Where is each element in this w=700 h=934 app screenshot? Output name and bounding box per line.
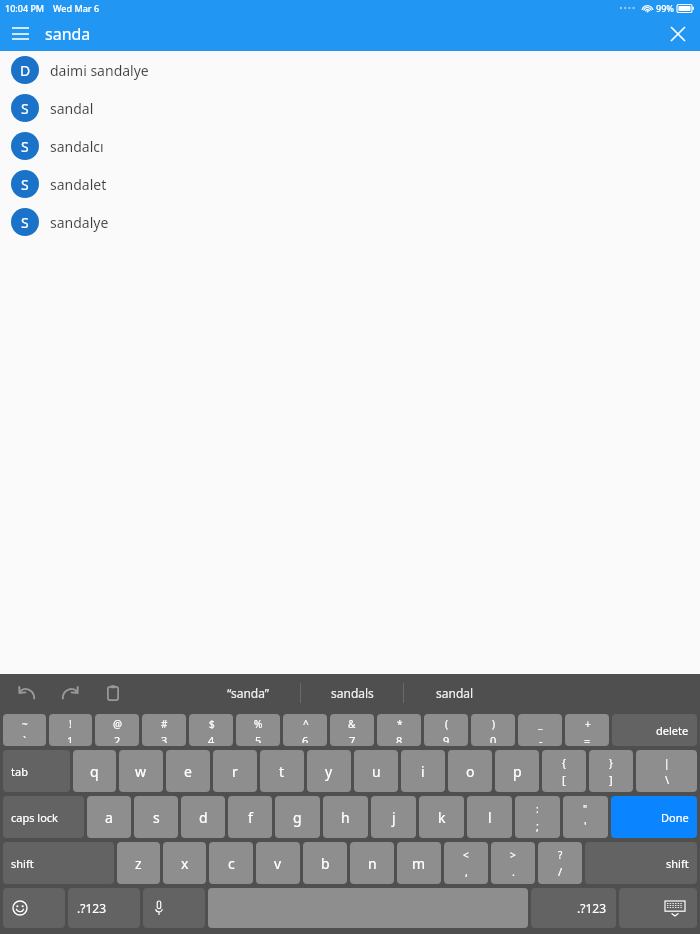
staticText: m <box>412 854 426 873</box>
button[interactable]: y <box>307 750 351 792</box>
staticText: t <box>279 762 285 781</box>
staticText: ^ <box>303 717 309 731</box>
button[interactable]: Done <box>611 796 697 838</box>
button[interactable]: S <box>0 127 700 165</box>
button[interactable]: caps lock <box>3 796 84 838</box>
button[interactable]: _ <box>518 714 562 746</box>
button[interactable]: Redo <box>57 680 83 706</box>
button[interactable]: .?123 <box>68 888 140 928</box>
button[interactable]: w <box>119 750 163 792</box>
staticText: $ <box>209 717 215 731</box>
button[interactable]: l <box>467 796 512 838</box>
staticText: } <box>609 756 613 770</box>
button[interactable]: a <box>87 796 131 838</box>
staticText: tab <box>11 764 28 779</box>
button[interactable]: S <box>0 89 700 127</box>
button[interactable]: .?123 <box>531 888 616 928</box>
button[interactable]: $ <box>189 714 233 746</box>
button[interactable]: o <box>448 750 492 792</box>
staticText: = <box>584 733 591 743</box>
staticText: f <box>248 808 253 827</box>
button[interactable]: g <box>275 796 320 838</box>
button[interactable]: k <box>419 796 464 838</box>
button[interactable]: r <box>213 750 257 792</box>
button[interactable]: D <box>0 51 700 89</box>
button[interactable]: | <box>636 750 697 792</box>
button[interactable]: Voice input <box>143 888 205 928</box>
staticText: 0 <box>490 733 497 743</box>
staticText: 5 <box>255 733 262 743</box>
button[interactable]: Paste <box>100 680 126 706</box>
button[interactable]: S <box>0 165 700 203</box>
button[interactable]: “sanda” <box>196 674 300 712</box>
button[interactable]: ~ <box>3 714 46 746</box>
button[interactable]: sandal <box>404 674 506 712</box>
button[interactable]: ^ <box>283 714 327 746</box>
button[interactable]: h <box>323 796 368 838</box>
staticText: ] <box>609 772 613 787</box>
button[interactable]: > <box>491 842 535 884</box>
button[interactable]: d <box>181 796 225 838</box>
button[interactable]: @ <box>95 714 139 746</box>
button[interactable]: delete <box>612 714 697 746</box>
button[interactable]: S <box>0 203 700 241</box>
button[interactable]: s <box>134 796 178 838</box>
staticText: daimi sandalye <box>50 61 149 80</box>
staticText: * <box>397 717 403 731</box>
button[interactable]: m <box>397 842 441 884</box>
button[interactable]: Hide keyboard <box>619 888 697 928</box>
staticText: q <box>90 762 99 781</box>
button[interactable]: q <box>73 750 116 792</box>
staticText: 1 <box>67 733 74 743</box>
button[interactable]: n <box>350 842 394 884</box>
button[interactable]: < <box>444 842 488 884</box>
staticText: e <box>184 762 192 781</box>
button[interactable]: u <box>354 750 398 792</box>
button[interactable]: + <box>565 714 609 746</box>
button[interactable]: f <box>228 796 272 838</box>
staticText: S <box>21 99 29 118</box>
staticText: ) <box>492 717 495 731</box>
staticText: D <box>20 61 31 80</box>
button[interactable]: c <box>209 842 253 884</box>
staticText: \ <box>665 772 670 787</box>
button[interactable]: x <box>163 842 206 884</box>
staticText: 4 <box>208 733 215 743</box>
button[interactable]: shift <box>585 842 697 884</box>
staticText: _ <box>538 717 543 731</box>
staticText: 7 <box>349 733 356 743</box>
button[interactable]: Emoji <box>3 888 65 928</box>
button[interactable]: { <box>542 750 586 792</box>
button[interactable]: Undo <box>14 680 40 706</box>
button[interactable]: Menu <box>0 16 40 51</box>
button[interactable]: j <box>371 796 416 838</box>
button[interactable]: % <box>236 714 280 746</box>
button[interactable]: shift <box>3 842 114 884</box>
button[interactable]: Close <box>656 16 700 51</box>
button[interactable]: } <box>589 750 633 792</box>
staticText: sandal <box>50 99 94 118</box>
button[interactable]: : <box>515 796 560 838</box>
button[interactable]: " <box>563 796 608 838</box>
button[interactable]: ! <box>49 714 92 746</box>
button[interactable]: b <box>303 842 347 884</box>
button[interactable]: * <box>377 714 421 746</box>
staticText: sanda <box>45 23 656 45</box>
staticText: sandal <box>436 685 474 701</box>
button[interactable]: e <box>166 750 210 792</box>
button[interactable]: p <box>495 750 539 792</box>
button[interactable]: tab <box>3 750 70 792</box>
button[interactable]: i <box>401 750 445 792</box>
button[interactable]: ) <box>471 714 515 746</box>
button[interactable]: z <box>117 842 160 884</box>
button[interactable]: ? <box>538 842 582 884</box>
button[interactable]: & <box>330 714 374 746</box>
button[interactable]: ( <box>424 714 468 746</box>
button[interactable]: t <box>260 750 304 792</box>
button[interactable]: # <box>142 714 186 746</box>
button[interactable]: sandals <box>301 674 403 712</box>
staticText: y <box>325 762 333 781</box>
button[interactable]: v <box>256 842 300 884</box>
staticText: k <box>438 808 446 827</box>
